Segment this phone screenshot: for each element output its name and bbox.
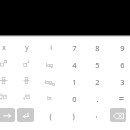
button[interactable]: mixed fraction <box>0 72 15 89</box>
staticText: 0 <box>72 94 77 104</box>
staticText: log <box>46 62 53 68</box>
button[interactable]: 2 <box>86 73 109 90</box>
staticText: 2 <box>95 77 100 87</box>
button[interactable]: 7 <box>63 39 86 56</box>
staticText: 7 <box>72 43 77 53</box>
button[interactable]: log base <box>38 73 61 90</box>
staticText: x <box>2 43 6 52</box>
button[interactable]: . <box>86 90 109 107</box>
button[interactable]: Enter <box>17 108 34 122</box>
button[interactable]: log <box>38 56 61 73</box>
staticText: 3 <box>120 77 125 87</box>
button[interactable]: 6 <box>111 56 130 73</box>
button[interactable]: 5 <box>86 56 109 73</box>
button[interactable]: 1 <box>63 73 86 90</box>
button[interactable]: 9 <box>111 39 130 56</box>
button[interactable]: ln <box>38 90 61 107</box>
button[interactable]: 4 <box>63 56 86 73</box>
staticText: 4 <box>72 60 77 70</box>
button[interactable]: power <box>0 56 15 73</box>
staticText: ln <box>47 95 52 102</box>
button[interactable]: fraction <box>15 72 38 89</box>
button[interactable]: y <box>15 39 38 56</box>
staticText: 1 <box>72 77 77 87</box>
staticText: i <box>50 43 52 52</box>
button[interactable]: Close bracket <box>62 107 85 124</box>
staticText: 8 <box>95 43 100 53</box>
staticText: log <box>45 79 52 85</box>
button[interactable]: 8 <box>86 39 109 56</box>
button[interactable]: Move cursor right <box>0 108 15 122</box>
button[interactable]: Backspace <box>110 108 126 122</box>
button[interactable]: square root <box>15 89 38 106</box>
staticText: 6 <box>120 60 125 70</box>
staticText: y <box>25 43 29 52</box>
button[interactable]: 0 <box>63 90 86 107</box>
button[interactable]: Comma <box>85 105 108 122</box>
button[interactable]: 3 <box>111 73 130 90</box>
staticText: , <box>95 109 98 119</box>
staticText: ) <box>72 111 75 121</box>
staticText: . <box>96 94 99 104</box>
button[interactable]: x <box>0 39 15 56</box>
button[interactable]: squared <box>15 56 38 73</box>
button[interactable]: equals <box>110 90 130 107</box>
button[interactable]: Open bracket <box>39 107 62 124</box>
staticText: ( <box>49 111 52 121</box>
staticText: 5 <box>95 60 100 70</box>
button[interactable]: nth root <box>0 89 15 106</box>
button[interactable]: i <box>39 39 62 56</box>
staticText: 9 <box>120 43 125 53</box>
